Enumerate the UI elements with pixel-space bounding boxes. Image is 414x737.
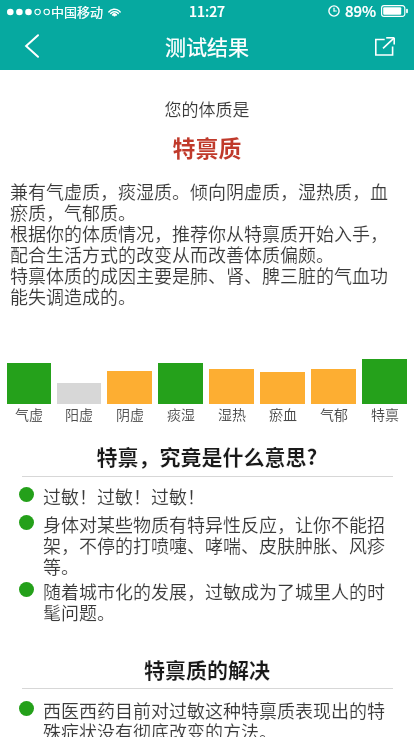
staticText: 中国移动 xyxy=(51,2,104,21)
staticText: 兼有气虚质，痰湿质。倾向阴虚质，湿热质，血 瘀质，气郁质。 根据你的体质情况，推… xyxy=(10,178,410,309)
staticText: 您的体质是 xyxy=(0,96,414,121)
staticText: 湿热 xyxy=(218,404,246,424)
staticText: 特禀，究竟是什么意思? xyxy=(0,441,414,471)
staticText: 阴虚 xyxy=(116,404,144,424)
staticText: 特禀 xyxy=(371,404,399,424)
staticText: 11:27 xyxy=(189,1,226,21)
staticText: 随着城市化的发展，过敏成为了城里人的时 髦问题。 xyxy=(43,578,408,625)
staticText: 测试结果 xyxy=(165,31,249,61)
staticText: 阳虚 xyxy=(65,404,93,424)
staticText: 气郁 xyxy=(320,404,348,424)
button[interactable]: Share xyxy=(356,22,414,70)
staticText: 痰湿 xyxy=(167,404,195,424)
staticText: 身体对某些物质有特异性反应，让你不能招 架，不停的打喷嚏、哮喘、皮肤肿胀、风疹 … xyxy=(43,511,408,579)
staticText: 过敏！过敏！过敏！ xyxy=(43,483,408,509)
staticText: 瘀血 xyxy=(269,404,297,424)
button[interactable]: Back xyxy=(0,22,63,70)
staticText: 特禀质的解决 xyxy=(0,654,414,684)
staticText: 89% xyxy=(345,0,377,22)
staticText: 西医西药目前对过敏这种特禀质表现出的特 殊症状没有彻底改变的方法。 xyxy=(43,697,408,737)
staticText: 特禀质 xyxy=(0,130,414,163)
staticText: 气虚 xyxy=(15,404,43,424)
